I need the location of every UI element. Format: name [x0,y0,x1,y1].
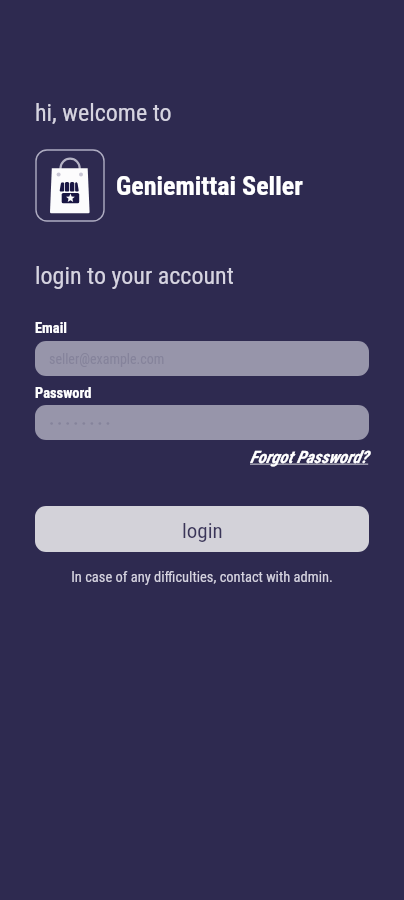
button[interactable]: login [35,506,369,552]
staticText: Geniemittai Seller [116,171,303,201]
staticText: Password [35,385,92,402]
button[interactable]: Forgot Password? [250,447,369,467]
button[interactable] [35,405,369,440]
staticText: hi, welcome to [35,99,172,127]
staticText: Forgot Password? [250,447,369,467]
button[interactable]: seller@example.com [35,341,369,376]
staticText: Email [35,320,68,337]
staticText: seller@example.com [49,351,165,367]
staticText: login to your account [35,262,234,290]
staticText: In case of any difficulties, contact wit… [35,569,369,586]
other: App logo [35,149,105,222]
staticText: login [182,519,223,544]
